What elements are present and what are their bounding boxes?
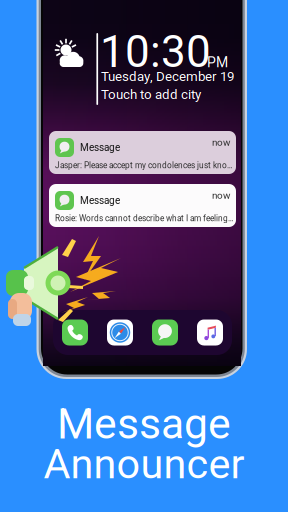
staticText: Message xyxy=(80,195,120,206)
button[interactable]: Phone xyxy=(62,319,88,345)
staticText: Message xyxy=(57,399,231,449)
button[interactable]: Messages xyxy=(152,319,178,345)
staticText: now xyxy=(212,190,230,201)
staticText: PM xyxy=(207,54,228,71)
button[interactable]: Music xyxy=(197,319,223,345)
staticText: Tuesday, December 19 xyxy=(101,69,234,84)
staticText: Rosie: Words cannot describe what I am f… xyxy=(55,214,234,223)
staticText: Announcer xyxy=(43,440,244,488)
button[interactable]: Safari xyxy=(107,319,133,345)
button[interactable]: Message xyxy=(49,131,236,174)
staticText: Jasper: Please accept my condolences jus… xyxy=(55,161,237,170)
staticText: Message xyxy=(80,142,120,153)
staticText: 10:30 xyxy=(100,26,211,78)
staticText: Touch to add city xyxy=(101,87,201,102)
staticText: now xyxy=(212,137,230,148)
button[interactable]: Message xyxy=(49,184,236,227)
